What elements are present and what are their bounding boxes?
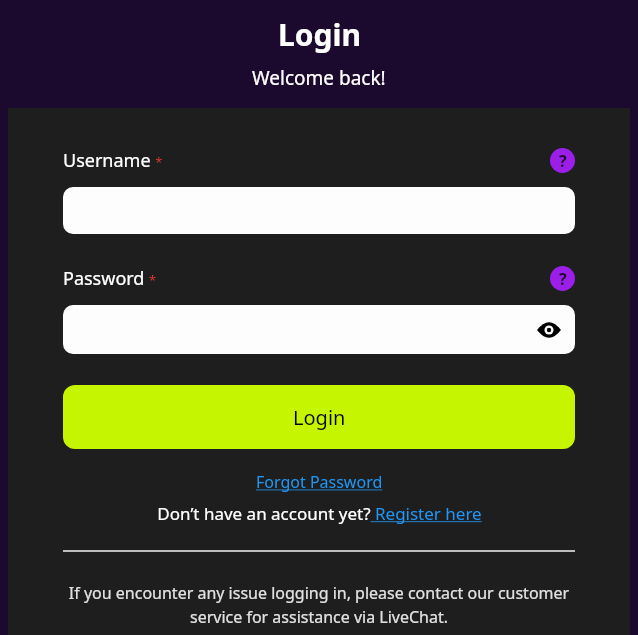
button[interactable]: Help [550, 148, 575, 173]
staticText: Login [293, 404, 346, 431]
button[interactable]: Login [63, 385, 575, 449]
staticText: ? [559, 150, 567, 172]
staticText: Welcome back! [252, 65, 386, 91]
staticText: Forgot Password [256, 471, 383, 493]
button[interactable]: Show password [63, 305, 575, 354]
button[interactable]: Don’t have an account yet? Register here [63, 502, 575, 525]
staticText: Username * [63, 148, 163, 173]
button[interactable]: Help [550, 266, 575, 291]
staticText: Login [278, 14, 361, 55]
staticText: If you encounter any issue logging in, p… [63, 582, 575, 628]
staticText: Don’t have an account yet? Register here [157, 502, 482, 525]
button[interactable]: Show password [532, 313, 566, 347]
button[interactable]: Forgot Password [252, 469, 387, 495]
staticText: Password * [63, 266, 157, 291]
staticText: ? [559, 268, 567, 290]
button[interactable] [63, 187, 575, 234]
